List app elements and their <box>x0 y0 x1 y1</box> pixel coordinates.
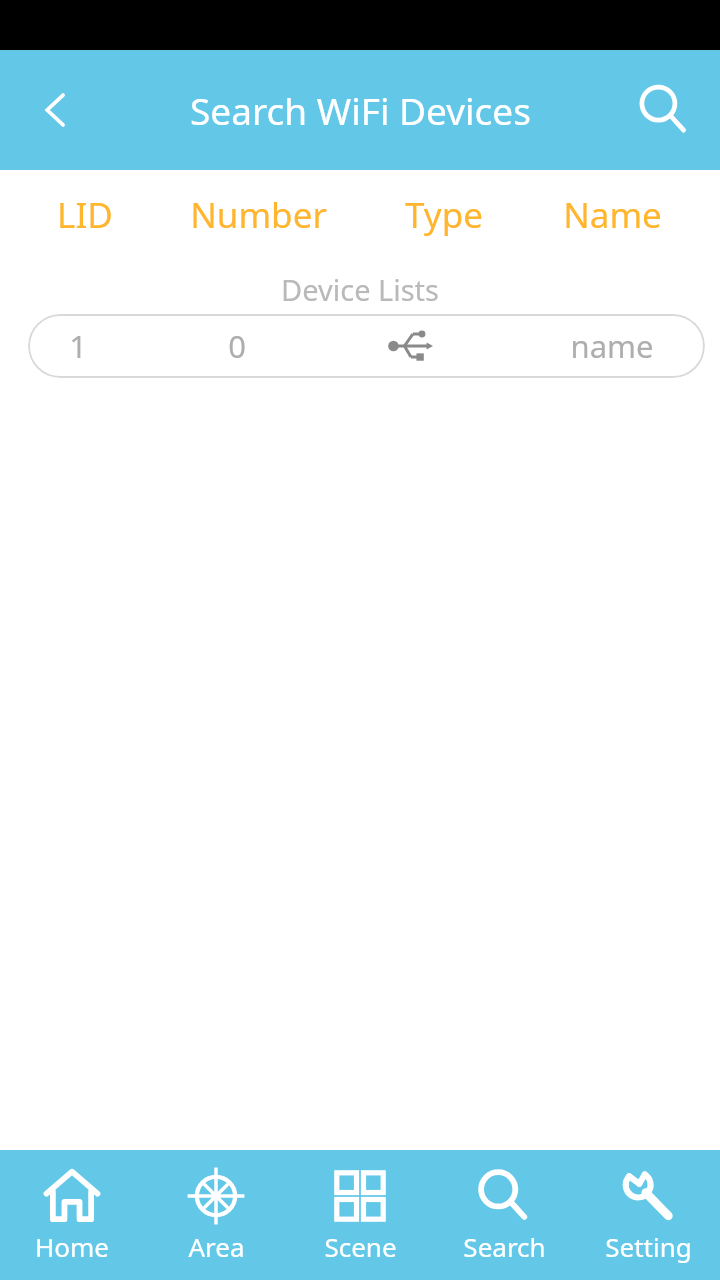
staticText: 0 <box>228 325 246 367</box>
staticText: LID <box>57 191 113 239</box>
staticText: Search <box>463 1229 546 1264</box>
staticText: Name <box>563 191 662 239</box>
staticText: Scene <box>324 1229 397 1264</box>
button[interactable]: Type <box>354 170 534 260</box>
button[interactable]: Search <box>622 68 706 152</box>
button[interactable]: Number <box>168 170 348 260</box>
button[interactable]: Back <box>18 72 94 148</box>
button[interactable]: Area <box>144 1150 288 1280</box>
staticText: Device Lists <box>281 270 439 309</box>
staticText: Search WiFi Devices <box>190 85 531 135</box>
staticText: name <box>570 325 654 367</box>
button[interactable]: Setting <box>576 1150 720 1280</box>
button[interactable]: Name <box>522 170 702 260</box>
button[interactable]: Search <box>432 1150 576 1280</box>
button[interactable]: Home <box>0 1150 144 1280</box>
staticText: Area <box>188 1229 245 1264</box>
button[interactable]: 1 <box>28 314 705 378</box>
button[interactable]: Scene <box>288 1150 432 1280</box>
staticText: Setting <box>605 1229 692 1264</box>
staticText: Home <box>35 1229 109 1264</box>
staticText: Number <box>190 191 327 239</box>
staticText: Type <box>405 191 483 239</box>
button[interactable]: LID <box>0 170 175 260</box>
staticText: 1 <box>69 325 87 367</box>
